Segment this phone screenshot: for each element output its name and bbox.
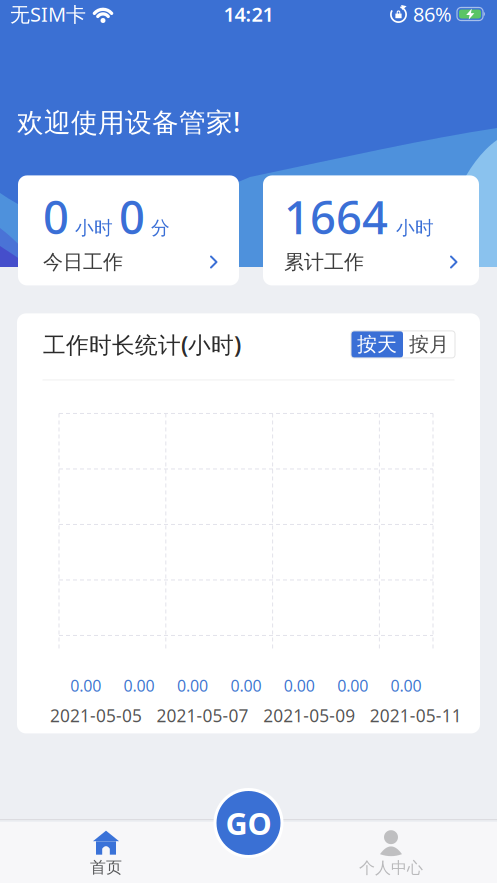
staticText: 小时 [75, 216, 113, 239]
staticText: 0 [43, 186, 69, 247]
staticText: 0.00 [337, 675, 368, 696]
button[interactable]: GO [213, 788, 283, 858]
button[interactable]: 个人中心 [331, 830, 451, 878]
staticText: 1664 [284, 186, 388, 247]
staticText: 2021-05-09 [263, 704, 355, 727]
staticText: 欢迎使用设备管家! [17, 104, 240, 139]
staticText: 2021-05-05 [50, 704, 142, 727]
button[interactable]: 0 [18, 175, 239, 285]
staticText: 2021-05-07 [157, 704, 249, 727]
staticText: 86% [413, 1, 452, 27]
staticText: 按天 [357, 332, 397, 357]
button[interactable]: 1664 [263, 175, 479, 285]
button[interactable]: 首页 [46, 831, 166, 877]
staticText: 0 [119, 186, 145, 247]
staticText: 0.00 [70, 675, 101, 696]
staticText: GO [225, 803, 271, 843]
staticText: 累计工作 [284, 250, 364, 274]
staticText: 分 [151, 216, 170, 239]
staticText: 无SIM卡 [10, 1, 86, 27]
staticText: 工作时长统计(小时) [43, 329, 241, 359]
staticText: 今日工作 [43, 250, 123, 274]
staticText: 个人中心 [359, 858, 423, 878]
button[interactable]: 按天 [351, 331, 403, 358]
staticText: 首页 [90, 858, 122, 877]
staticText: 0.00 [124, 675, 155, 696]
staticText: 小时 [396, 216, 434, 239]
staticText: 0.00 [230, 675, 261, 696]
staticText: 2021-05-11 [370, 704, 462, 727]
button[interactable]: 按月 [403, 331, 455, 358]
staticText: 0.00 [177, 675, 208, 696]
staticText: 14:21 [223, 1, 273, 27]
staticText: 按月 [409, 332, 449, 357]
staticText: 0.00 [284, 675, 315, 696]
staticText: 0.00 [391, 675, 422, 696]
